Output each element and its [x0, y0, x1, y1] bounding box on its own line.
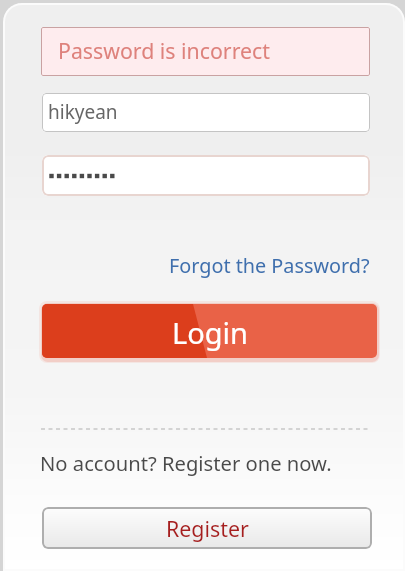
staticText: Password is incorrect	[58, 36, 270, 65]
button[interactable]: Login	[42, 304, 377, 358]
staticText: No account? Register one now.	[40, 449, 332, 477]
button[interactable]: Password is incorrect	[41, 27, 370, 76]
staticText: Forgot the Password?	[169, 252, 370, 279]
button[interactable]	[42, 155, 370, 196]
staticText: Login	[172, 313, 248, 352]
staticText: hikyean	[48, 99, 118, 125]
staticText: Register	[166, 514, 249, 543]
button[interactable]: hikyean	[42, 93, 370, 132]
button[interactable]: Forgot the Password?	[169, 252, 370, 279]
button[interactable]: Register	[42, 507, 372, 549]
